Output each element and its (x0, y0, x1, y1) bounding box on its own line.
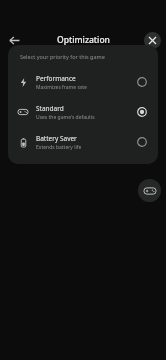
button[interactable]: Standard (8, 97, 158, 127)
staticText: Standard (36, 104, 64, 113)
button[interactable]: Battery Saver (8, 127, 158, 157)
staticText: Battery Saver (36, 134, 77, 143)
button[interactable]: Game tools (138, 179, 161, 202)
staticText: Extends battery life (36, 144, 82, 151)
staticText: Select your priority for this game (20, 53, 105, 60)
staticText: Performance (36, 74, 76, 83)
button[interactable]: Close (144, 32, 161, 49)
staticText: Optimization (57, 34, 110, 46)
button[interactable]: Back (3, 29, 25, 51)
staticText: Uses the game's defaults (36, 114, 95, 121)
staticText: Maximizes frame rate (36, 84, 87, 91)
button[interactable]: Performance (8, 67, 158, 97)
